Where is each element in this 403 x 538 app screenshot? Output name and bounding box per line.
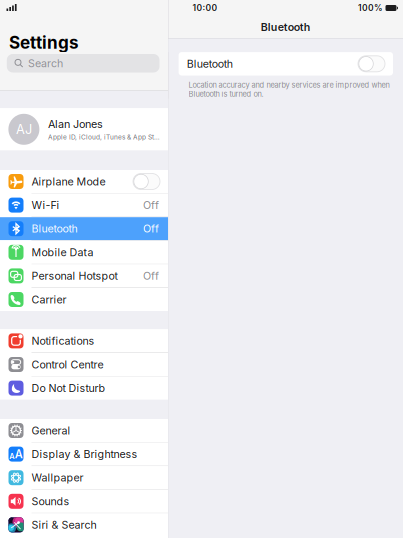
button[interactable]: Control Centre bbox=[0, 353, 168, 376]
staticText: Search bbox=[28, 57, 63, 70]
staticText: Apple ID, iCloud, iTunes & App St… bbox=[48, 133, 160, 141]
button[interactable]: Do Not Disturb bbox=[0, 377, 168, 400]
staticText: Alan Jones bbox=[48, 118, 103, 131]
staticText: Control Centre bbox=[31, 358, 103, 371]
staticText: Notifications bbox=[31, 334, 94, 347]
staticText: A bbox=[9, 452, 14, 461]
button[interactable]: A bbox=[0, 443, 168, 466]
staticText: Bluetooth bbox=[31, 222, 77, 235]
staticText: Sounds bbox=[31, 495, 69, 508]
staticText: 100% bbox=[358, 3, 383, 13]
staticText: Settings bbox=[9, 32, 79, 53]
staticText: Airplane Mode bbox=[31, 175, 105, 188]
staticText: Off bbox=[143, 269, 159, 282]
staticText: AJ bbox=[16, 122, 32, 137]
button[interactable]: Airplane Mode bbox=[0, 170, 168, 193]
staticText: Location accuracy and nearby services ar… bbox=[189, 80, 390, 99]
staticText: Wallpaper bbox=[31, 471, 83, 484]
staticText: Do Not Disturb bbox=[31, 382, 105, 394]
staticText: 10:00 bbox=[193, 3, 218, 13]
button[interactable]: Carrier bbox=[0, 288, 168, 311]
staticText: Wi-Fi bbox=[31, 199, 59, 211]
button[interactable]: Siri & Search bbox=[0, 513, 168, 536]
button[interactable]: Wallpaper bbox=[0, 466, 168, 489]
staticText: General bbox=[31, 424, 70, 437]
staticText: Off bbox=[143, 222, 159, 235]
staticText: Off bbox=[143, 199, 159, 211]
staticText: Carrier bbox=[31, 293, 66, 306]
button[interactable]: Notifications bbox=[0, 329, 168, 352]
staticText: A bbox=[15, 447, 23, 461]
staticText: Mobile Data bbox=[31, 246, 93, 259]
staticText: Bluetooth bbox=[261, 20, 311, 33]
button[interactable]: Personal Hotspot bbox=[0, 264, 168, 287]
button[interactable]: Mobile Data bbox=[0, 241, 168, 264]
button[interactable]: General bbox=[0, 419, 168, 442]
button[interactable]: Bluetooth bbox=[0, 217, 168, 240]
button[interactable]: AJ bbox=[0, 108, 168, 150]
staticText: Personal Hotspot bbox=[31, 269, 117, 282]
staticText: Siri & Search bbox=[31, 518, 96, 531]
button[interactable]: Sounds bbox=[0, 490, 168, 513]
button[interactable]: Wi-Fi bbox=[0, 194, 168, 217]
staticText: Display & Brightness bbox=[31, 448, 137, 460]
staticText: Bluetooth bbox=[187, 57, 233, 70]
